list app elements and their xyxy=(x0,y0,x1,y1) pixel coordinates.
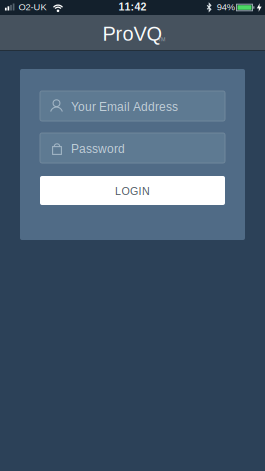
staticText: 94% xyxy=(217,2,235,12)
staticText: 11:42 xyxy=(118,1,146,13)
staticText: LOGIN xyxy=(115,185,150,197)
staticText: ProVQ xyxy=(102,23,162,45)
button[interactable]: LOGIN xyxy=(40,176,225,205)
staticText: Password xyxy=(71,142,125,155)
button[interactable]: Password xyxy=(40,133,225,163)
staticText: TM xyxy=(158,37,165,42)
staticText: Your Email Address xyxy=(71,100,178,113)
staticText: O2-UK xyxy=(18,2,46,12)
button[interactable]: Your Email Address xyxy=(40,91,225,121)
